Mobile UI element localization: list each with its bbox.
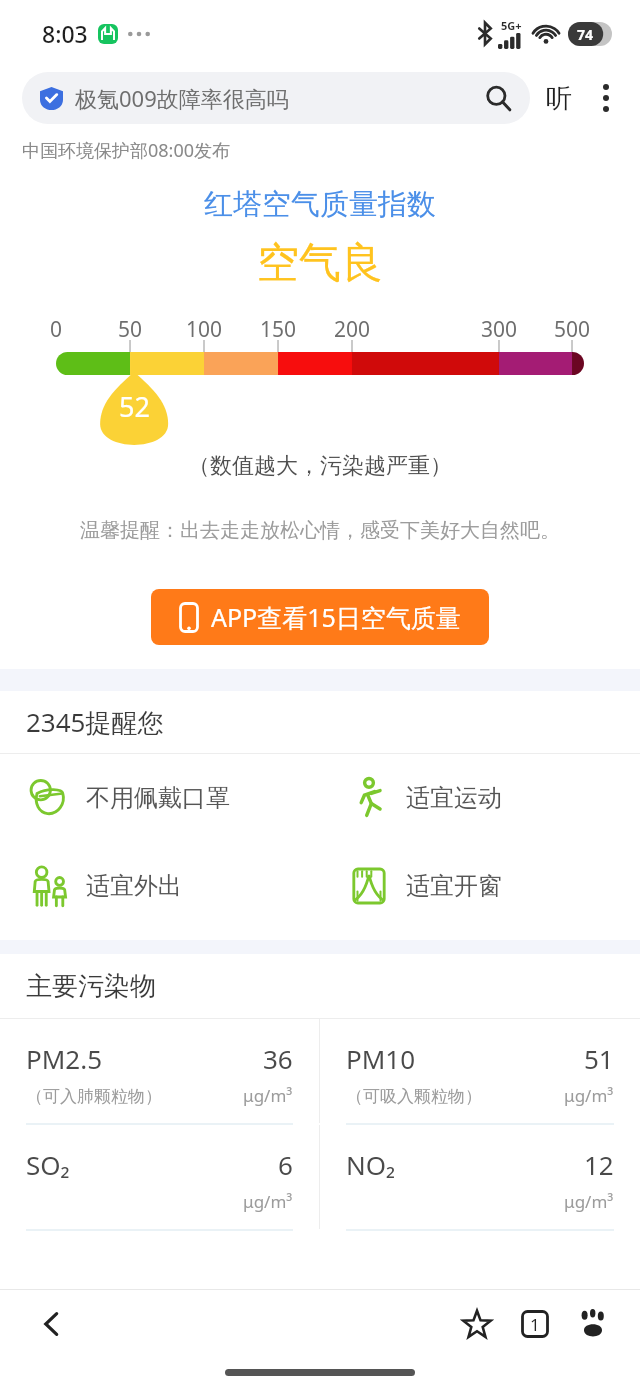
button[interactable]: 极氪009故障率很高吗 [22, 72, 530, 124]
button[interactable]: PM10 [320, 1019, 640, 1125]
staticText: 不用佩戴口罩 [86, 783, 230, 813]
staticText: 红塔空气质量指数 [204, 186, 436, 223]
staticText: 中国环境保护部08:00发布 [22, 138, 231, 163]
button[interactable]: 适宜开窗 [320, 842, 640, 930]
staticText: 51 [584, 1041, 614, 1076]
staticText: SO₂ [26, 1147, 70, 1182]
staticText: 500 [554, 315, 591, 344]
staticText: 适宜运动 [406, 783, 502, 813]
button[interactable]: APP查看15日空气质量 [151, 589, 489, 645]
staticText: 听 [546, 82, 572, 115]
staticText: 适宜开窗 [406, 871, 502, 901]
button[interactable]: 不用佩戴口罩 [0, 754, 320, 842]
staticText: （可吸入颗粒物） [346, 1086, 482, 1107]
button[interactable]: SO₂ [0, 1125, 319, 1231]
button[interactable]: NO₂ [320, 1125, 640, 1231]
staticText: 5G+ [501, 18, 522, 33]
button[interactable]: Bookmark [448, 1295, 506, 1353]
staticText: 0 [50, 315, 63, 344]
staticText: NO₂ [346, 1147, 396, 1182]
staticText: APP查看15日空气质量 [211, 600, 461, 634]
button[interactable]: Baidu [564, 1295, 622, 1353]
staticText: 300 [481, 315, 518, 344]
button[interactable]: Search [480, 80, 516, 116]
staticText: PM10 [346, 1041, 416, 1076]
staticText: 200 [334, 315, 371, 344]
staticText: 52 [119, 388, 150, 424]
staticText: 适宜外出 [86, 871, 182, 901]
staticText: 6 [278, 1147, 293, 1182]
button[interactable]: 听 [530, 72, 588, 124]
staticText: 12 [584, 1147, 614, 1182]
staticText: 74 [577, 25, 594, 44]
button[interactable]: More options [588, 72, 624, 124]
staticText: 极氪009故障率很高吗 [75, 83, 289, 113]
staticText: μg/m³ [564, 1084, 614, 1107]
button[interactable]: Tabs [506, 1295, 564, 1353]
staticText: 空气良 [257, 237, 383, 290]
staticText: 50 [118, 315, 143, 344]
staticText: μg/m³ [564, 1190, 614, 1213]
staticText: （数值越大，污染越严重） [188, 452, 452, 480]
staticText: 主要污染物 [26, 970, 156, 1003]
staticText: μg/m³ [243, 1190, 293, 1213]
button[interactable]: Back [28, 1300, 76, 1348]
staticText: 36 [263, 1041, 293, 1076]
button[interactable]: 适宜运动 [320, 754, 640, 842]
staticText: 2345提醒您 [26, 704, 164, 740]
staticText: 1 [530, 1313, 540, 1336]
button[interactable]: PM2.5 [0, 1019, 319, 1125]
staticText: μg/m³ [243, 1084, 293, 1107]
button[interactable]: 适宜外出 [0, 842, 320, 930]
staticText: 150 [260, 315, 297, 344]
staticText: 8:03 [42, 18, 88, 49]
staticText: （可入肺颗粒物） [26, 1086, 162, 1107]
staticText: PM2.5 [26, 1041, 103, 1076]
staticText: 温馨提醒：出去走走放松心情，感受下美好大自然吧。 [80, 518, 560, 543]
staticText: 100 [186, 315, 223, 344]
